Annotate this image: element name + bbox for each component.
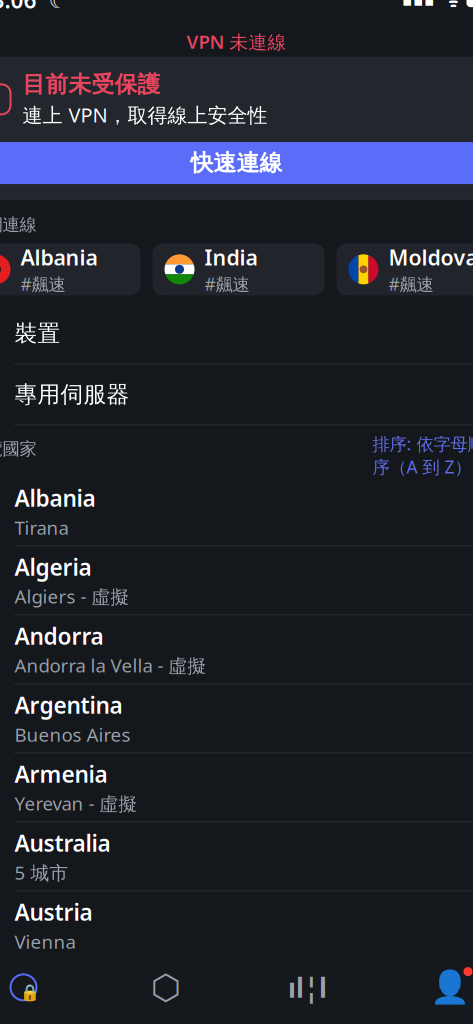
staticText: ıl¦l	[288, 970, 327, 1005]
staticText: 5 城市	[14, 860, 68, 885]
button[interactable]: Australia	[0, 822, 473, 890]
staticText: ∎∎∎	[401, 0, 434, 9]
staticText: Albania	[20, 243, 97, 271]
button[interactable]: ↱	[0, 303, 473, 363]
staticText: 專用伺服器	[14, 380, 129, 408]
staticText: 🔒	[19, 983, 39, 1001]
staticText: Andorra	[14, 621, 103, 651]
staticText: 連上 VPN，取得線上安全性	[22, 101, 267, 128]
staticText: 近期連線	[0, 214, 36, 235]
staticText: Algiers - 虛擬	[14, 584, 129, 609]
staticText: VPN 未連線	[186, 29, 286, 54]
staticText: Algeria	[14, 552, 91, 582]
staticText: 快速連線	[190, 149, 282, 177]
staticText: Armenia	[14, 759, 107, 789]
button[interactable]: Albania	[0, 477, 473, 545]
button[interactable]: Moldova	[336, 243, 473, 295]
button[interactable]: VPN 位置	[0, 962, 94, 1012]
button[interactable]: Albania	[0, 243, 140, 295]
button[interactable]: 網狀網路	[94, 962, 236, 1012]
staticText: Australia	[14, 828, 110, 858]
staticText: #飆速	[388, 272, 433, 295]
button[interactable]: India	[152, 243, 324, 295]
button[interactable]: Argentina	[0, 684, 473, 752]
staticText: Tirana	[14, 515, 68, 540]
button[interactable]: 🗀	[0, 364, 473, 424]
button[interactable]: Austria	[0, 891, 473, 959]
staticText: India	[204, 243, 257, 271]
staticText: 目前未受保護	[22, 71, 160, 98]
button[interactable]: Algeria	[0, 546, 473, 614]
staticText: Yerevan - 虛擬	[14, 791, 137, 816]
staticText: 👤	[429, 969, 469, 1006]
staticText: #飆速	[204, 272, 249, 295]
button[interactable]: 排序: 依字母順序（A 到 Z）	[366, 432, 473, 478]
button[interactable]: 快速連線	[0, 142, 473, 184]
button[interactable]: Andorra	[0, 615, 473, 683]
staticText: Albania	[14, 483, 95, 513]
staticText: 78	[472, 0, 473, 9]
staticText: 裝置	[14, 319, 60, 347]
button[interactable]: 帳號	[378, 962, 473, 1012]
staticText: Vienna	[14, 929, 75, 954]
staticText: 排序: 依字母順序（A 到 Z）	[372, 432, 473, 478]
staticText: 23:06 ☾	[0, 0, 68, 15]
staticText: Moldova	[388, 243, 473, 271]
staticText: Austria	[14, 897, 92, 927]
staticText: 瀏覽國家	[0, 438, 36, 460]
button[interactable]: 統計	[236, 962, 378, 1012]
staticText: Argentina	[14, 690, 122, 720]
staticText: #飆速	[20, 272, 65, 295]
button[interactable]: Armenia	[0, 753, 473, 821]
staticText: Andorra la Vella - 虛擬	[14, 653, 206, 678]
staticText: ⬡	[150, 968, 180, 1007]
staticText: ᯤ	[434, 0, 466, 12]
staticText: Buenos Aires	[14, 722, 130, 747]
